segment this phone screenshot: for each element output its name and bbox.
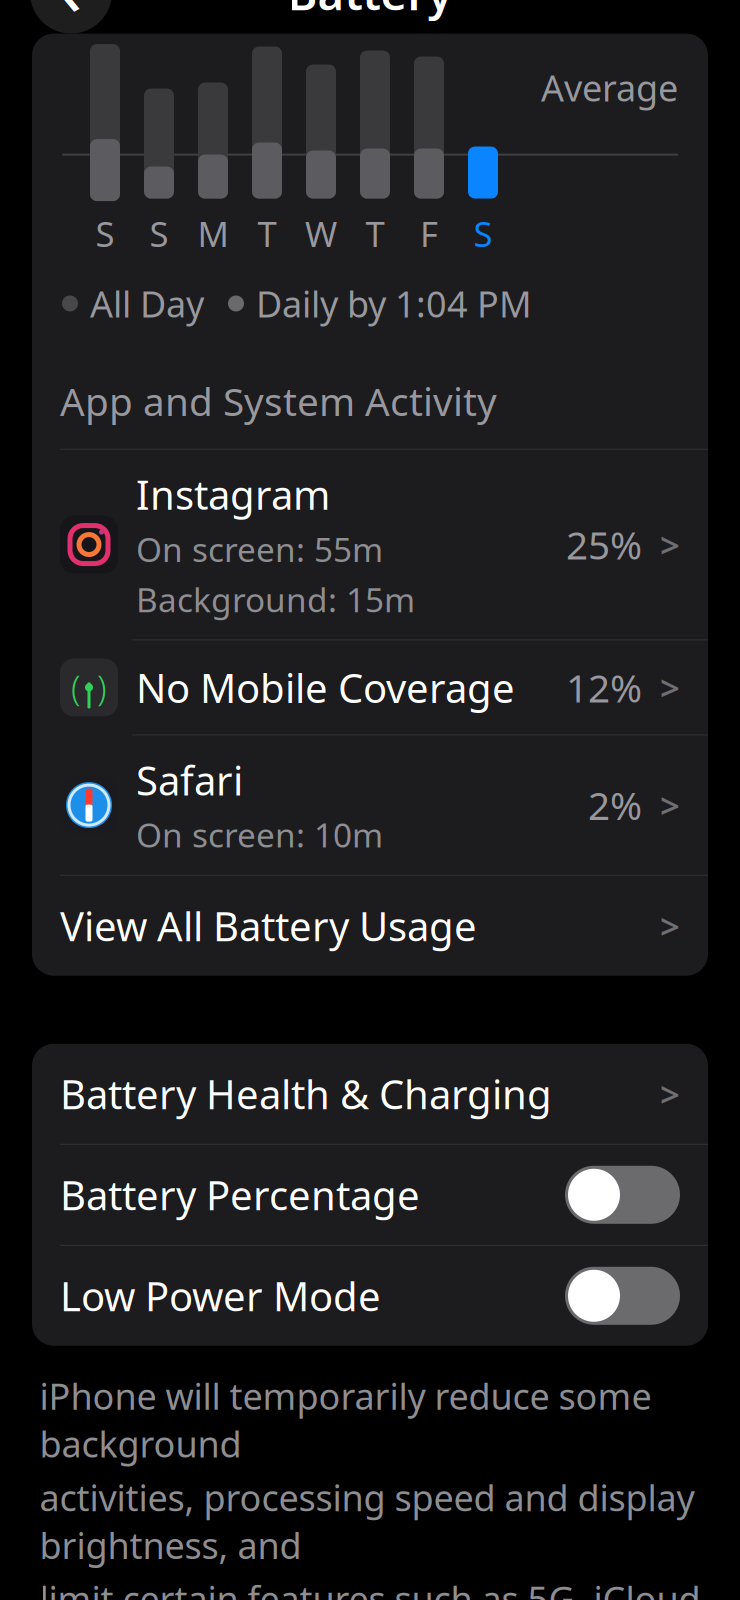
- staticText: Battery Percentage: [60, 1168, 420, 1221]
- staticText: >: [660, 1071, 680, 1117]
- staticText: On screen: 55m: [136, 527, 383, 571]
- staticText: S: [149, 211, 168, 257]
- staticText: Battery Health & Charging: [60, 1067, 552, 1120]
- staticText: On screen: 10m: [136, 812, 383, 857]
- staticText: 25%: [566, 519, 642, 570]
- staticText: >: [660, 782, 680, 828]
- button[interactable]: Safari: [32, 735, 708, 875]
- staticText: Safari: [136, 753, 243, 806]
- staticText: Daily by 1:04 PM: [256, 280, 532, 327]
- staticText: App and System Activity: [60, 375, 497, 427]
- staticText: Low Power Mode: [60, 1269, 381, 1322]
- staticText: 2%: [588, 779, 642, 831]
- staticText: Battery: [287, 0, 452, 23]
- staticText: iPhone will temporarily reduce some back…: [39, 1372, 651, 1467]
- staticText: ): [97, 664, 107, 710]
- button[interactable]: Battery Health & Charging: [32, 1044, 708, 1144]
- staticText: T: [365, 211, 384, 257]
- staticText: Instagram: [136, 468, 330, 521]
- staticText: ‹: [59, 0, 82, 35]
- staticText: View All Battery Usage: [60, 899, 477, 952]
- staticText: >: [660, 903, 680, 949]
- staticText: F: [420, 211, 438, 257]
- staticText: S: [473, 211, 492, 257]
- staticText: W: [305, 211, 337, 257]
- staticText: (: [71, 664, 81, 710]
- staticText: 12%: [566, 662, 642, 713]
- staticText: Average: [541, 64, 678, 111]
- staticText: >: [660, 521, 680, 567]
- button[interactable]: Battery Percentage: [32, 1145, 708, 1245]
- button[interactable]: (: [32, 640, 708, 734]
- button[interactable]: Instagram: [32, 450, 708, 639]
- button[interactable]: Low Power Mode: [32, 1246, 708, 1346]
- staticText: S: [95, 211, 114, 257]
- staticText: Background: 15m: [136, 577, 415, 621]
- staticText: activities, processing speed and display…: [39, 1473, 694, 1569]
- staticText: No Mobile Coverage: [136, 661, 515, 714]
- button[interactable]: Back: [30, 0, 112, 34]
- staticText: T: [257, 211, 276, 257]
- staticText: All Day: [90, 280, 204, 327]
- staticText: limit certain features such as 5G, iClou…: [39, 1575, 700, 1600]
- staticText: M: [197, 211, 228, 257]
- button[interactable]: View All Battery Usage: [32, 876, 708, 976]
- staticText: >: [660, 664, 680, 710]
